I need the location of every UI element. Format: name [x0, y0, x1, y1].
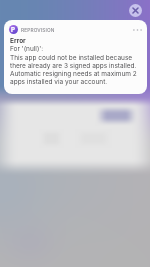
staticText: P	[11, 26, 16, 34]
button[interactable]: Close	[129, 4, 142, 17]
staticText: REPROVISION	[21, 27, 55, 33]
staticText: Error	[10, 37, 26, 45]
button[interactable]: More options	[132, 27, 143, 33]
staticText: For '(null)': This app could not be inst…	[10, 45, 137, 85]
button[interactable]: P	[4, 20, 147, 94]
